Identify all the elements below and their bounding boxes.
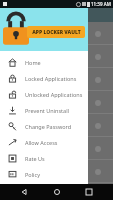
staticText: Allow Access xyxy=(25,139,58,146)
button[interactable]: Policy xyxy=(0,166,88,182)
button[interactable]: Home xyxy=(0,54,88,70)
staticText: 11:39 AM xyxy=(91,1,111,7)
staticText: APP LOCKER VAULT xyxy=(32,29,81,36)
button[interactable]: Allow Access xyxy=(0,134,88,150)
button[interactable]: Recent apps xyxy=(81,184,97,200)
button[interactable]: Unlocked Applications xyxy=(0,86,88,102)
button[interactable]: Home xyxy=(49,184,65,200)
button[interactable]: Rate Us xyxy=(0,150,88,166)
button[interactable]: Locked Applications xyxy=(0,70,88,86)
button[interactable]: Prevent Uninstall xyxy=(0,102,88,118)
staticText: Rate Us xyxy=(25,155,45,162)
staticText: Policy xyxy=(25,171,40,178)
staticText: Home xyxy=(25,59,41,66)
staticText: Locked Applications xyxy=(25,75,77,82)
staticText: Prevent Uninstall xyxy=(25,107,69,114)
staticText: Unlocked Applications xyxy=(25,91,83,98)
staticText: Change Password xyxy=(25,123,72,130)
button[interactable]: Back xyxy=(16,184,32,200)
button[interactable]: Change Password xyxy=(0,118,88,134)
